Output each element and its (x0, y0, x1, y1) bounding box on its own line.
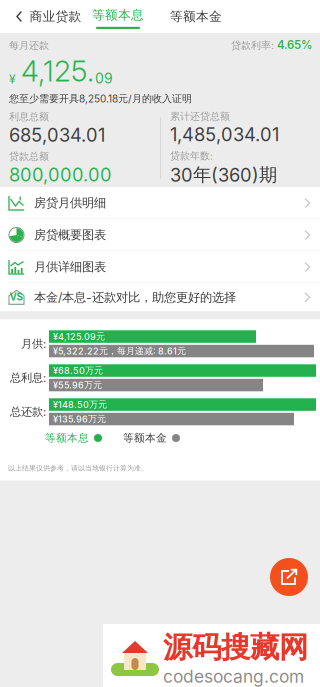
staticText: 800,000.00 (9, 164, 112, 186)
staticText: 每月还款 (9, 39, 49, 52)
staticText: 4.65% (274, 38, 312, 52)
staticText: ¥55.96万元 (53, 379, 102, 391)
staticText: 商业贷款 (29, 8, 81, 24)
staticText: 等额本息 (45, 431, 89, 445)
staticText: 以上结果仅供参考，请以当地银行计算为准。 (8, 464, 148, 472)
staticText: 等额本金 (123, 431, 167, 445)
staticText: ¥4,125.09元 (53, 331, 105, 342)
button[interactable]: 等额本金 (172, 0, 219, 33)
staticText: 685,034.01 (9, 124, 105, 146)
staticText: 贷款年数: (170, 150, 213, 162)
staticText: ¥68.50万元 (53, 365, 103, 376)
staticText: ¥ (9, 72, 16, 86)
staticText: VS (9, 291, 23, 303)
staticText: 利息总额 (9, 110, 49, 123)
staticText: 4,125. (21, 54, 94, 88)
staticText: ¥135.96万元 (53, 413, 106, 425)
staticText: ¥148.50万元 (53, 399, 107, 410)
staticText: 房贷月供明细 (34, 195, 106, 211)
button[interactable]: 月供详细图表 (0, 251, 320, 283)
staticText: 总利息: (10, 371, 46, 385)
staticText: 月供详细图表 (34, 259, 106, 275)
staticText: 累计还贷总额 (170, 110, 230, 123)
button[interactable]: 房贷月供明细 (0, 187, 320, 219)
staticText: 等额本金 (170, 8, 222, 24)
staticText: 30年(360)期 (170, 163, 277, 186)
staticText: 您至少需要开具8,250.18元/月的收入证明 (9, 92, 192, 105)
button[interactable]: 房贷概要图表 (0, 219, 320, 251)
staticText: 源码搜藏网 (163, 629, 308, 666)
staticText: 房贷概要图表 (34, 227, 106, 243)
staticText: 09 (95, 70, 113, 87)
staticText: 1,485,034.01 (170, 124, 279, 146)
staticText: ¥5,322.22元，每月递减: 8.61元 (53, 345, 186, 357)
staticText: 总还款: (10, 405, 46, 419)
staticText: 等额本息 (92, 7, 144, 23)
button[interactable]: Share (270, 558, 308, 596)
button[interactable]: VS (0, 283, 320, 311)
staticText: 贷款利率: (231, 39, 274, 52)
staticText: 月供: (21, 337, 46, 351)
button[interactable]: 商业贷款 (0, 0, 94, 33)
staticText: 本金/本息-还款对比，助您更好的选择 (34, 290, 236, 305)
button[interactable]: 等额本息 (94, 0, 141, 33)
staticText: 贷款总额 (9, 150, 49, 163)
staticText: codesocang.com (163, 666, 304, 687)
